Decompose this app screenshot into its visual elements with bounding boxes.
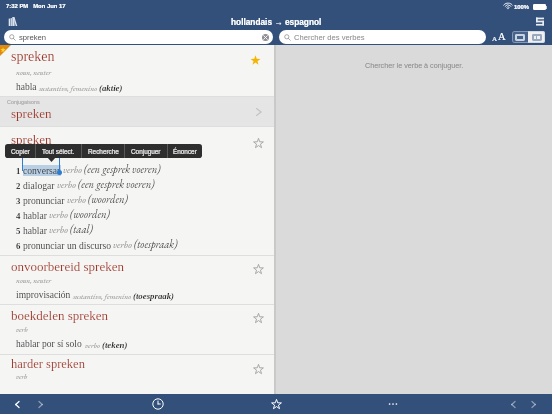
button[interactable]: Back bbox=[12, 399, 23, 410]
staticText: verbo bbox=[49, 223, 68, 236]
button[interactable]: boekdelen spreken bbox=[0, 305, 274, 354]
staticText: (toespraak) bbox=[134, 237, 178, 251]
staticText: spreken bbox=[11, 106, 52, 120]
staticText: (een gesprek voeren) bbox=[84, 162, 161, 176]
staticText: A bbox=[492, 35, 498, 43]
staticText: spreken bbox=[11, 132, 52, 146]
staticText: (woorden) bbox=[88, 192, 128, 206]
button[interactable]: Chercher des verbes bbox=[279, 30, 486, 44]
button[interactable]: Text size bbox=[492, 30, 506, 44]
button[interactable]: Conjugaisons bbox=[0, 97, 274, 126]
button[interactable]: Single pane bbox=[512, 31, 528, 43]
staticText: 2 bbox=[16, 181, 21, 191]
staticText: Chercher le verbe à conjuguer. bbox=[365, 61, 464, 69]
button[interactable]: Favourites bbox=[271, 399, 282, 410]
staticText: 100% bbox=[514, 4, 530, 11]
button[interactable]: Split pane bbox=[528, 31, 545, 43]
staticText: (aktie) bbox=[99, 83, 123, 93]
staticText: Recherche bbox=[88, 148, 119, 155]
staticText: verbo bbox=[85, 340, 102, 350]
staticText: Tout sélect. bbox=[42, 148, 75, 155]
staticText: hablar bbox=[23, 210, 47, 221]
staticText: Conjugaisons bbox=[7, 99, 40, 105]
button[interactable]: Next entry bbox=[528, 399, 539, 410]
staticText: dialogar bbox=[23, 180, 55, 191]
button[interactable]: Library bbox=[8, 17, 18, 26]
staticText: 4 bbox=[16, 211, 21, 221]
staticText: 6 bbox=[16, 241, 21, 251]
staticText: Copier bbox=[11, 148, 30, 155]
button[interactable]: Forward bbox=[35, 399, 46, 410]
button[interactable]: More bbox=[387, 398, 399, 410]
staticText: verbo bbox=[67, 193, 86, 206]
staticText: verb bbox=[16, 325, 28, 335]
staticText: spreken bbox=[19, 33, 47, 41]
button[interactable]: spreken bbox=[4, 30, 273, 44]
staticText: hablar bbox=[23, 225, 47, 236]
staticText: verbo bbox=[49, 208, 68, 221]
staticText: hablar por sí solo bbox=[16, 339, 85, 350]
staticText: 1 bbox=[16, 166, 21, 176]
staticText: verbo bbox=[57, 178, 76, 191]
staticText: (toespraak) bbox=[133, 291, 175, 301]
staticText: (teken) bbox=[102, 340, 128, 350]
staticText: Énoncer bbox=[173, 148, 197, 155]
staticText: spreken bbox=[11, 49, 55, 65]
staticText: hollandais → espagnol bbox=[231, 17, 322, 26]
staticText: (taal) bbox=[70, 222, 93, 236]
button[interactable]: spreken bbox=[0, 45, 274, 96]
staticText: Chercher des verbes bbox=[294, 33, 365, 41]
staticText: verb bbox=[16, 372, 28, 381]
staticText: Conjuguer bbox=[131, 148, 161, 155]
staticText: verbo bbox=[113, 238, 132, 251]
staticText: A bbox=[498, 31, 506, 43]
button[interactable]: Previous entry bbox=[508, 399, 519, 410]
staticText: boekdelen spreken bbox=[11, 308, 109, 322]
button[interactable]: Swap languages bbox=[536, 17, 544, 26]
button[interactable]: Copier bbox=[5, 144, 35, 158]
staticText: 5 bbox=[16, 226, 21, 236]
staticText: 3 bbox=[16, 196, 21, 206]
staticText: sustantivo, femenino bbox=[73, 291, 133, 301]
staticText: onvoorbereid spreken bbox=[11, 259, 124, 273]
button[interactable]: harder spreken bbox=[0, 355, 274, 394]
button[interactable]: onvoorbereid spreken bbox=[0, 256, 274, 304]
staticText: pronunciar un discurso bbox=[23, 240, 111, 251]
staticText: verbo bbox=[63, 163, 82, 176]
button[interactable]: History bbox=[152, 398, 164, 410]
button[interactable]: Énoncer bbox=[168, 144, 202, 158]
staticText: conversar bbox=[23, 165, 61, 176]
staticText: (woorden) bbox=[70, 207, 110, 221]
staticText: improvisación bbox=[16, 290, 73, 301]
staticText: noun, neuter bbox=[16, 68, 51, 78]
button[interactable]: Tout sélect. bbox=[36, 144, 81, 158]
staticText: noun, neuter bbox=[16, 276, 51, 286]
button[interactable]: Conjuguer bbox=[125, 144, 167, 158]
staticText: harder spreken bbox=[11, 357, 85, 371]
staticText: sustantivo, femenino bbox=[39, 83, 99, 93]
button[interactable]: Recherche bbox=[82, 144, 124, 158]
staticText: pronunciar bbox=[23, 195, 65, 206]
button[interactable]: spreken bbox=[0, 127, 274, 255]
staticText: habla bbox=[16, 82, 39, 93]
staticText: (een gesprek voeren) bbox=[78, 177, 155, 191]
staticText: 7:32 PM Mon Jun 17 bbox=[6, 3, 66, 10]
